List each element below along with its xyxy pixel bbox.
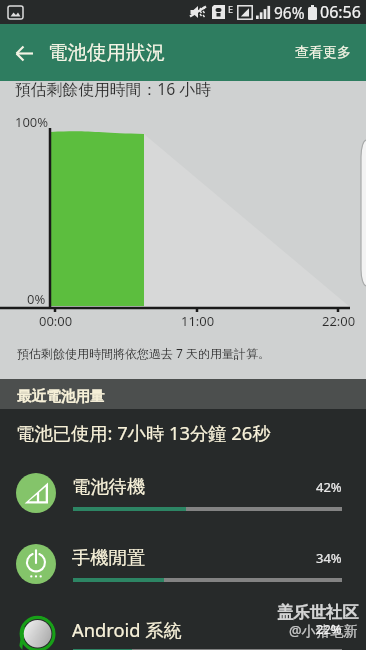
staticText: 11:00 — [181, 312, 215, 330]
staticText: 34% — [316, 549, 342, 567]
button[interactable]: 查看更多 — [280, 24, 366, 81]
button[interactable]: 手機閒置 — [0, 529, 366, 600]
staticText: 最近電池用量 — [17, 387, 105, 405]
staticText: 100% — [15, 113, 49, 131]
staticText: 預估剩餘使用時間將依您過去 7 天的用量計算。 — [17, 345, 271, 361]
button[interactable]: Back — [0, 29, 48, 77]
staticText: 22% — [316, 620, 342, 638]
staticText: E — [228, 3, 234, 15]
staticText: 00:00 — [39, 312, 73, 330]
staticText: 電池待機 — [72, 475, 146, 498]
staticText: 06:56 — [320, 1, 361, 23]
staticText: 42% — [316, 478, 342, 496]
staticText: 預估剩餘使用時間：16 小時 — [15, 78, 211, 100]
staticText: Android 系統 — [72, 617, 182, 642]
staticText: 96% — [274, 2, 305, 23]
button[interactable]: Android 系統 — [0, 600, 366, 650]
staticText: 盖乐世社区 — [277, 602, 359, 623]
staticText: 0% — [27, 290, 46, 308]
button[interactable]: 最近電池用量 — [0, 379, 366, 409]
staticText: 查看更多 — [295, 44, 351, 62]
staticText: 22:00 — [322, 312, 356, 330]
staticText: 手機閒置 — [72, 546, 146, 569]
staticText: @小猪笔新 — [289, 621, 358, 640]
button[interactable]: 電池待機 — [0, 458, 366, 529]
staticText: 電池已使用: 7小時 13分鐘 26秒 — [16, 420, 271, 445]
staticText: 電池使用狀況 — [48, 40, 165, 65]
